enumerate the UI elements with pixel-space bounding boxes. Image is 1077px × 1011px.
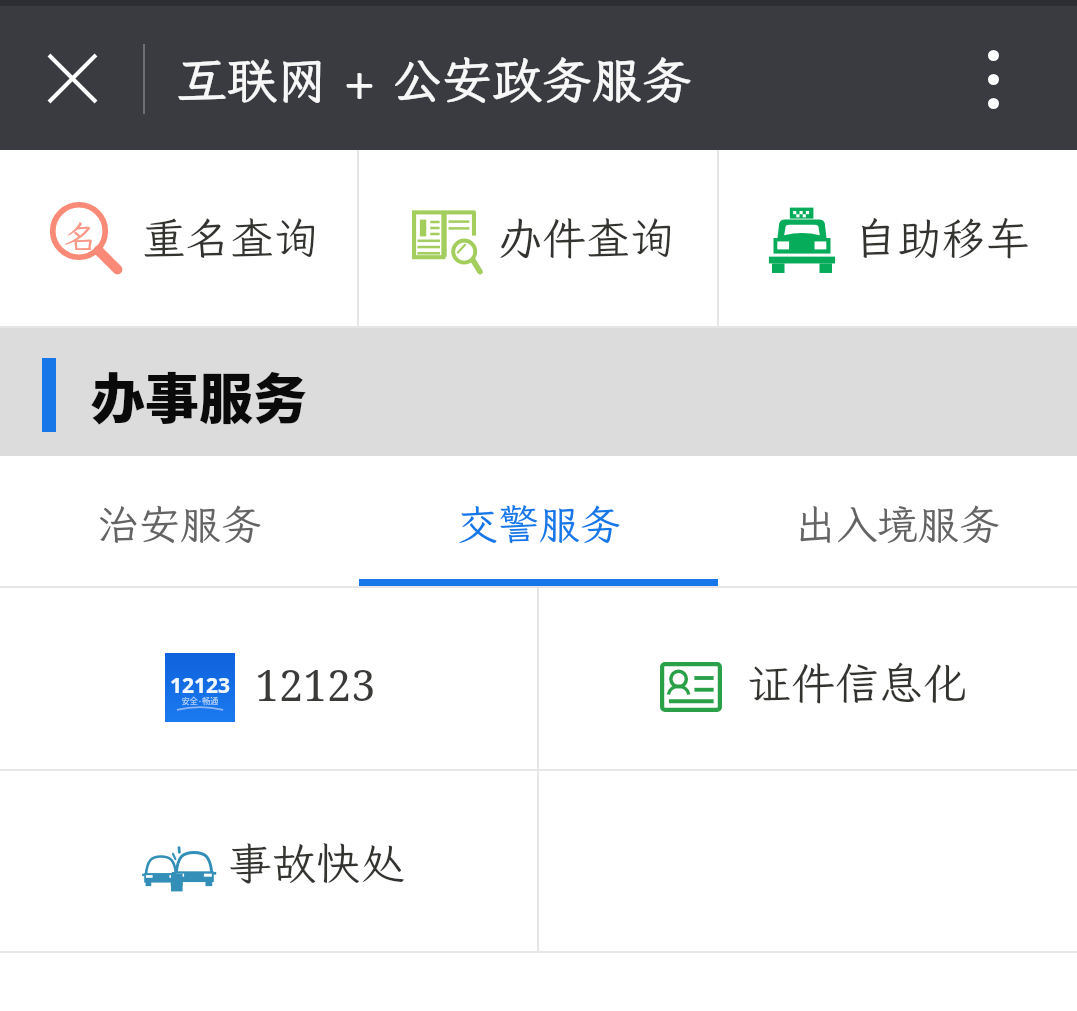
button[interactable]: 12123 — [0, 588, 537, 769]
staticText: 事故快处 — [228, 834, 404, 892]
button[interactable]: 治安服务 — [0, 462, 359, 586]
staticText: 安全·畅通 — [165, 695, 235, 707]
staticText: 治安服务 — [98, 497, 262, 551]
staticText: 交警服务 — [457, 497, 621, 551]
staticText: 名 — [63, 215, 98, 250]
staticText: 互联网 + 公安政务服务 — [177, 46, 692, 112]
button[interactable]: 自助移车 — [719, 150, 1077, 326]
button[interactable]: 名 — [0, 150, 357, 326]
staticText: 重名查询 — [142, 209, 318, 267]
button[interactable]: 交警服务 — [359, 462, 718, 586]
staticText: 证件信息化 — [747, 654, 967, 712]
staticText: 12123 — [165, 671, 235, 700]
staticText: 12123 — [255, 655, 376, 714]
button[interactable]: 事故快处 — [0, 771, 537, 951]
button[interactable]: 证件信息化 — [539, 588, 1077, 769]
button[interactable]: 办件查询 — [359, 150, 717, 326]
button[interactable]: Close — [26, 52, 118, 104]
staticText: 自助移车 — [854, 209, 1030, 267]
staticText: 办事服务 — [91, 356, 307, 434]
staticText: 出入境服务 — [795, 497, 1000, 551]
button[interactable]: More options — [948, 44, 1038, 114]
button[interactable]: 出入境服务 — [718, 462, 1077, 586]
staticText: 办件查询 — [498, 209, 674, 267]
